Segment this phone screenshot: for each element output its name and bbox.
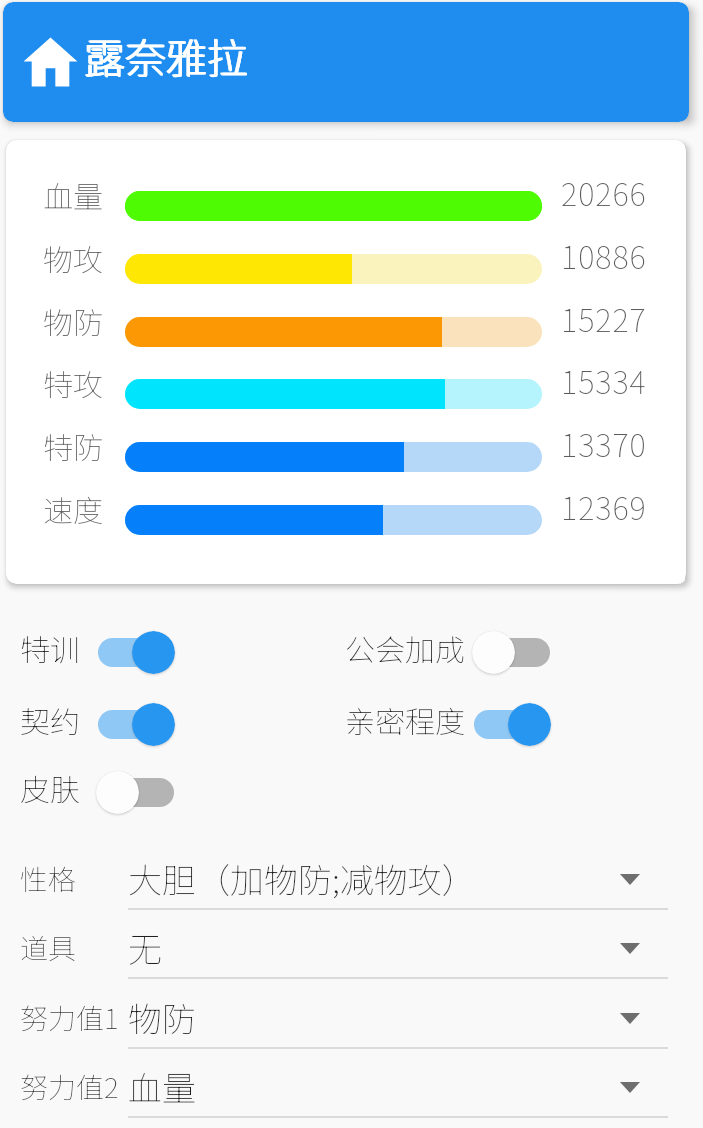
staticText: 10886 [561,233,647,278]
button[interactable]: 努力值2 [0,1054,703,1118]
staticText: 血量 [43,173,103,216]
staticText: 15227 [561,296,647,341]
staticText: 大胆（加物防;减物攻） [128,854,476,903]
staticText: 努力值2 [20,1066,119,1107]
button[interactable] [472,630,551,674]
staticText: 露奈雅拉 [85,25,249,84]
staticText: 12369 [561,484,647,529]
staticText: 20266 [561,170,647,215]
button[interactable]: 性格 [0,846,703,910]
button[interactable]: 道具 [0,915,703,979]
staticText: 物防 [128,993,196,1042]
staticText: 特攻 [43,361,103,404]
staticText: 努力值1 [20,997,119,1038]
staticText: 露奈雅拉 [85,26,249,85]
staticText: 公会加成 [345,626,465,669]
staticText: 血量 [128,1062,196,1111]
staticText: 露奈雅拉 [83,25,247,84]
staticText: 亲密程度 [345,698,465,741]
staticText: 性格 [20,858,77,899]
staticText: 物攻 [43,236,103,279]
button[interactable] [96,702,175,746]
button[interactable] [96,770,175,814]
staticText: 特防 [43,424,103,467]
staticText: 13370 [561,421,647,466]
staticText: 道具 [20,927,77,968]
button[interactable] [96,630,175,674]
button[interactable] [472,702,551,746]
staticText: 物防 [43,299,103,342]
staticText: 特训 [20,626,80,669]
staticText: 露奈雅拉 [84,25,248,84]
staticText: 15334 [561,358,647,403]
staticText: 露奈雅拉 [84,26,248,85]
staticText: 无 [128,923,162,972]
staticText: 速度 [43,487,103,530]
button[interactable]: 努力值1 [0,985,703,1049]
button[interactable]: 露奈雅拉 [3,2,689,122]
staticText: 皮肤 [20,766,80,809]
staticText: 契约 [20,698,80,741]
